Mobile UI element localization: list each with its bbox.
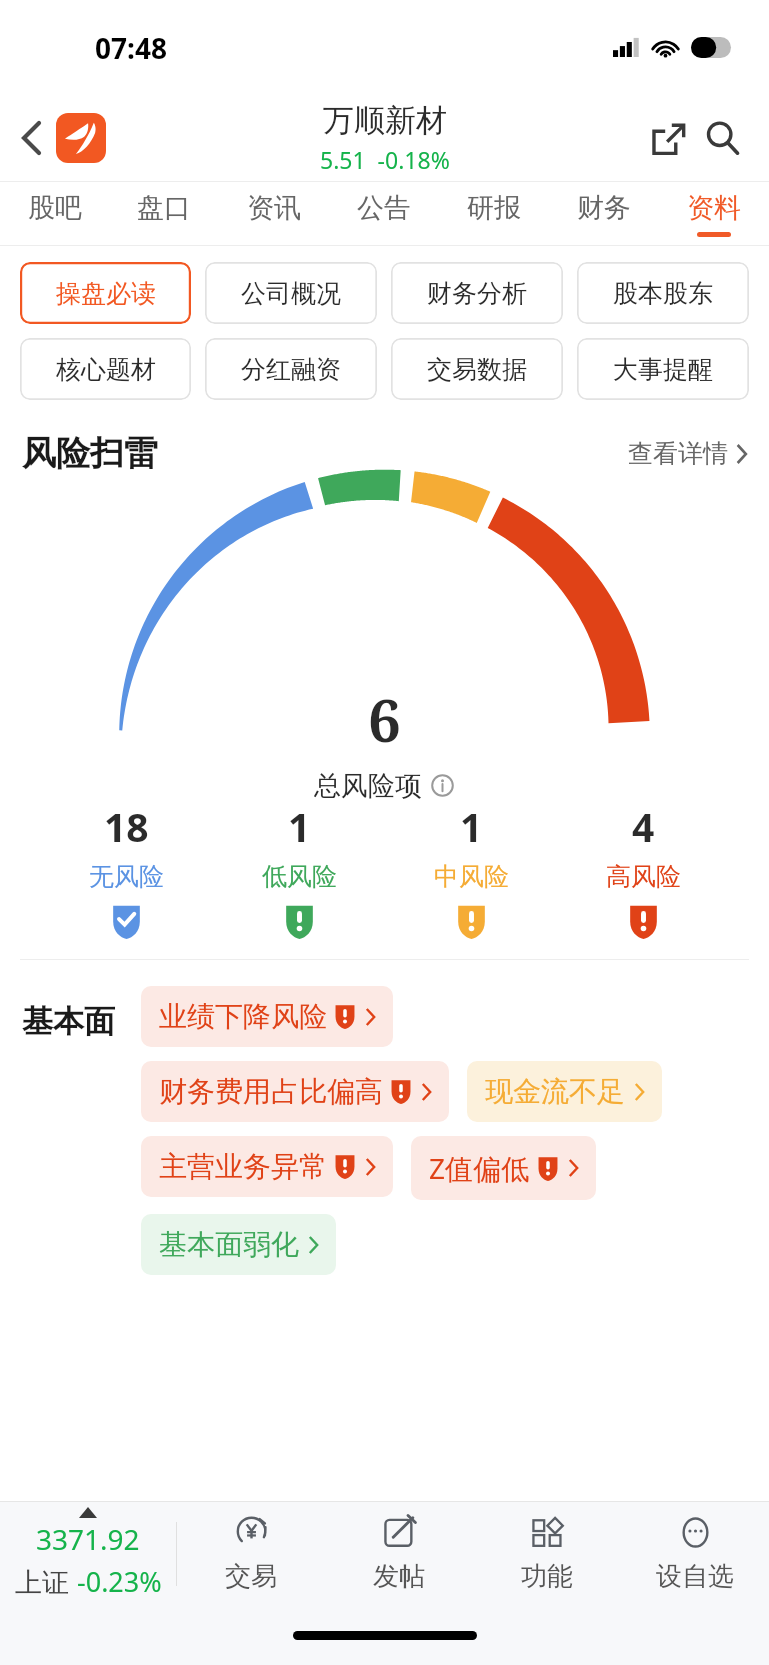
button[interactable]: 发帖 [325, 1502, 473, 1605]
staticText: 股吧 [28, 191, 82, 225]
staticText: 研报 [467, 191, 521, 225]
staticText: 低风险 [262, 861, 337, 892]
staticText: 07:48 [95, 29, 167, 67]
button[interactable]: 核心题材 [20, 338, 191, 400]
staticText: 交易 [225, 1560, 277, 1593]
staticText: 18 [104, 800, 149, 853]
staticText: 资讯 [247, 191, 301, 225]
button[interactable]: 资讯 [219, 182, 329, 245]
staticText: 风险扫雷 [22, 432, 158, 475]
staticText: 发帖 [373, 1560, 425, 1593]
button[interactable]: 设自选 [621, 1502, 769, 1605]
staticText: 基本面 [22, 1002, 115, 1041]
button[interactable]: 财务费用占比偏高 [141, 1061, 449, 1122]
button[interactable]: 主营业务异常 [141, 1136, 393, 1197]
button[interactable]: 公告 [329, 182, 439, 245]
staticText: 5.51 -0.18% [320, 144, 450, 175]
staticText: 设自选 [656, 1560, 734, 1593]
button[interactable]: 资料 [659, 182, 769, 245]
staticText: 公司概况 [241, 278, 341, 309]
button[interactable]: 交易 [177, 1502, 325, 1605]
staticText: 查看详情 [628, 438, 728, 469]
staticText: 功能 [521, 1560, 573, 1593]
staticText: 无风险 [89, 861, 164, 892]
staticText: Z值偏低 [429, 1149, 530, 1187]
button[interactable]: Z值偏低 [411, 1136, 596, 1200]
button[interactable]: 财务 [549, 182, 659, 245]
staticText: 交易数据 [427, 354, 527, 385]
staticText: 大事提醒 [613, 354, 713, 385]
button[interactable]: 现金流不足 [467, 1061, 662, 1122]
staticText: 中风险 [434, 861, 509, 892]
staticText: 6 [368, 680, 401, 759]
button[interactable]: 操盘必读 [20, 262, 191, 324]
button[interactable]: 基本面弱化 [141, 1214, 336, 1275]
button[interactable]: 查看详情 [624, 434, 751, 473]
button[interactable]: 功能 [473, 1502, 621, 1605]
button[interactable]: 1 [213, 800, 385, 939]
button[interactable]: 盘口 [109, 182, 219, 245]
button[interactable]: 研报 [439, 182, 549, 245]
button[interactable]: 财务分析 [391, 262, 563, 324]
staticText: 1 [288, 800, 311, 853]
button[interactable]: Info [429, 772, 455, 798]
button[interactable]: 分红融资 [205, 338, 377, 400]
button[interactable]: Share [641, 111, 695, 165]
staticText: 核心题材 [56, 354, 156, 385]
staticText: 资料 [687, 191, 741, 225]
staticText: 操盘必读 [56, 278, 156, 309]
staticText: 现金流不足 [485, 1074, 625, 1109]
button[interactable]: 股吧 [0, 182, 109, 245]
staticText: 上证 [15, 1563, 77, 1600]
button[interactable]: App logo [56, 113, 106, 163]
staticText: 公告 [357, 191, 411, 225]
button[interactable]: 3371.92 [0, 1507, 176, 1600]
button[interactable]: 18 [40, 800, 213, 939]
button[interactable]: Back [8, 114, 56, 162]
staticText: 分红融资 [241, 354, 341, 385]
staticText: 基本面弱化 [159, 1227, 299, 1262]
staticText: 业绩下降风险 [159, 999, 327, 1034]
staticText: 主营业务异常 [159, 1149, 327, 1184]
staticText: 高风险 [606, 861, 681, 892]
staticText: 盘口 [137, 191, 191, 225]
staticText: 财务费用占比偏高 [159, 1074, 383, 1109]
staticText: 3371.92 [36, 1520, 140, 1558]
staticText: 股本股东 [613, 278, 713, 309]
staticText: 财务 [577, 191, 631, 225]
button[interactable]: 业绩下降风险 [141, 986, 393, 1047]
staticText: 1 [460, 800, 483, 853]
button[interactable]: 交易数据 [391, 338, 563, 400]
staticText: 总风险项 [314, 769, 422, 800]
staticText: 4 [632, 800, 655, 853]
button[interactable]: Search [695, 111, 749, 165]
staticText: 万顺新材 [323, 101, 447, 140]
button[interactable]: 1 [385, 800, 557, 939]
button[interactable]: 大事提醒 [577, 338, 749, 400]
staticText: -0.23% [77, 1563, 162, 1600]
button[interactable]: 4 [557, 800, 729, 939]
staticText: 财务分析 [427, 278, 527, 309]
button[interactable]: 股本股东 [577, 262, 749, 324]
button[interactable]: 公司概况 [205, 262, 377, 324]
